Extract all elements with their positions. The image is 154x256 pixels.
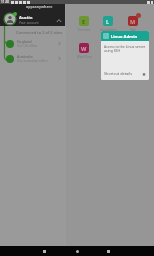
staticText: Your account	[19, 21, 39, 25]
button[interactable]: Australia	[0, 52, 66, 65]
staticText: Our UK office	[17, 44, 38, 48]
staticText: England	[17, 39, 32, 44]
other: Delete shortcut	[142, 72, 146, 76]
staticText: appsanywhere	[26, 4, 53, 9]
staticText: Word Docs	[77, 55, 92, 59]
staticText: Austin	[19, 15, 33, 21]
button[interactable]: Shortcut details	[101, 69, 149, 78]
staticText: Evernote	[78, 28, 91, 32]
staticText: Connected to 2 of 2 sites	[16, 30, 63, 35]
staticText: Linux Admin	[100, 28, 117, 32]
staticText: using SSH	[104, 48, 120, 53]
other: Collapse	[56, 18, 62, 24]
staticText: E	[82, 18, 86, 25]
button[interactable]: Home	[72, 246, 82, 256]
button[interactable]: England	[0, 37, 66, 50]
staticText: Australia	[17, 54, 33, 59]
staticText: Mail	[130, 28, 136, 32]
button[interactable]: W	[73, 43, 95, 59]
staticText: Our australian office	[17, 59, 48, 63]
staticText: Access to the Linux server	[104, 44, 146, 49]
button[interactable]: E	[73, 16, 95, 32]
staticText: L	[106, 18, 110, 25]
button[interactable]: Back	[39, 246, 49, 256]
button[interactable]: Recents	[103, 246, 113, 256]
staticText: W	[81, 45, 87, 52]
staticText: Linux Admin	[111, 34, 138, 40]
staticText: 11:30	[1, 0, 10, 4]
button[interactable]: M	[122, 16, 144, 32]
staticText: Shortcut details	[104, 71, 132, 76]
button[interactable]: L	[97, 16, 119, 32]
staticText: M	[130, 18, 136, 25]
